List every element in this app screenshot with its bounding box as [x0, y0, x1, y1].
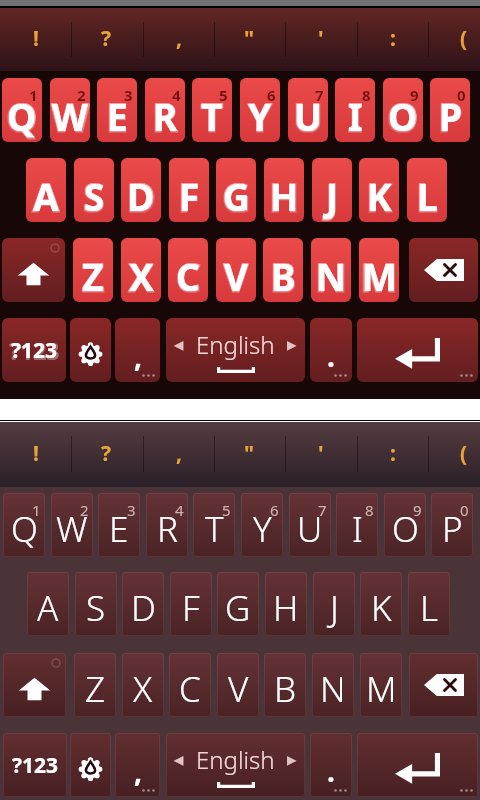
- button[interactable]: Q: [3, 493, 45, 557]
- button[interactable]: Period: [310, 733, 352, 797]
- staticText: O: [392, 505, 419, 553]
- staticText: J: [325, 169, 339, 222]
- button[interactable]: Symbols: [2, 318, 66, 382]
- staticText: ,: [176, 24, 182, 53]
- button[interactable]: (: [428, 8, 480, 71]
- staticText: M: [366, 665, 397, 713]
- button[interactable]: K: [360, 572, 402, 636]
- button[interactable]: M: [360, 653, 402, 717]
- staticText: V: [222, 248, 250, 302]
- button[interactable]: C: [169, 653, 211, 717]
- button[interactable]: F: [169, 158, 209, 222]
- button[interactable]: E: [98, 493, 140, 557]
- button[interactable]: O: [384, 493, 426, 557]
- staticText: W: [52, 91, 88, 141]
- button[interactable]: A: [26, 158, 66, 222]
- button[interactable]: R: [146, 493, 188, 557]
- button[interactable]: ": [214, 8, 285, 71]
- button[interactable]: (: [428, 422, 480, 487]
- button[interactable]: X: [121, 238, 161, 302]
- button[interactable]: T: [193, 493, 235, 557]
- button[interactable]: W: [51, 493, 93, 557]
- button[interactable]: F: [170, 572, 212, 636]
- staticText: I: [347, 88, 364, 142]
- button[interactable]: B: [263, 238, 303, 302]
- button[interactable]: L: [408, 572, 450, 636]
- staticText: Z: [82, 250, 105, 302]
- button[interactable]: M: [359, 238, 399, 302]
- button[interactable]: H: [265, 572, 307, 636]
- button[interactable]: Backspace: [409, 238, 478, 302]
- staticText: B: [274, 665, 297, 713]
- button[interactable]: Space: [166, 733, 305, 797]
- button[interactable]: P: [430, 78, 470, 142]
- button[interactable]: !: [0, 422, 71, 487]
- button[interactable]: I: [335, 78, 375, 142]
- staticText: 8: [365, 500, 374, 520]
- button[interactable]: N: [312, 653, 354, 717]
- button[interactable]: G: [216, 158, 256, 222]
- button[interactable]: D: [121, 158, 161, 222]
- button[interactable]: Q: [2, 78, 42, 142]
- button[interactable]: W: [50, 78, 90, 142]
- button[interactable]: Y: [240, 78, 280, 142]
- button[interactable]: ,: [143, 422, 214, 487]
- staticText: 1: [32, 500, 41, 520]
- button[interactable]: Z: [73, 238, 113, 302]
- button[interactable]: K: [359, 158, 399, 222]
- button[interactable]: Comma: [115, 318, 160, 382]
- button[interactable]: ?: [71, 422, 142, 487]
- button[interactable]: ?: [71, 8, 142, 71]
- button[interactable]: ,: [143, 8, 214, 71]
- button[interactable]: I: [336, 493, 378, 557]
- button[interactable]: B: [264, 653, 306, 717]
- button[interactable]: U: [289, 493, 331, 557]
- button[interactable]: Y: [241, 493, 283, 557]
- staticText: V: [223, 250, 249, 302]
- button[interactable]: Space: [166, 318, 305, 382]
- button[interactable]: N: [311, 238, 351, 302]
- button[interactable]: :: [357, 422, 428, 487]
- button[interactable]: ": [214, 422, 285, 487]
- staticText: X: [129, 251, 154, 301]
- button[interactable]: H: [264, 158, 304, 222]
- button[interactable]: D: [122, 572, 164, 636]
- button[interactable]: U: [288, 78, 328, 142]
- staticText: T: [205, 505, 224, 553]
- button[interactable]: !: [0, 8, 71, 71]
- button[interactable]: Settings: [70, 318, 111, 382]
- button[interactable]: Comma: [115, 733, 160, 797]
- button[interactable]: Shift: [2, 238, 65, 302]
- button[interactable]: J: [312, 158, 352, 222]
- button[interactable]: S: [75, 572, 117, 636]
- button[interactable]: V: [217, 653, 259, 717]
- staticText: V: [223, 249, 249, 302]
- button[interactable]: P: [431, 493, 473, 557]
- button[interactable]: :: [357, 8, 428, 71]
- button[interactable]: Enter: [357, 318, 478, 382]
- button[interactable]: Settings: [70, 733, 111, 797]
- button[interactable]: C: [168, 238, 208, 302]
- button[interactable]: Symbols: [3, 733, 67, 797]
- button[interactable]: O: [383, 78, 423, 142]
- button[interactable]: Z: [74, 653, 116, 717]
- button[interactable]: T: [192, 78, 232, 142]
- button[interactable]: L: [407, 158, 447, 222]
- button[interactable]: J: [313, 572, 355, 636]
- button[interactable]: R: [145, 78, 185, 142]
- button[interactable]: S: [74, 158, 114, 222]
- button[interactable]: V: [216, 238, 256, 302]
- staticText: U: [294, 91, 322, 141]
- button[interactable]: Enter: [357, 733, 478, 797]
- staticText: 0: [460, 500, 469, 520]
- button[interactable]: Shift: [3, 653, 66, 717]
- button[interactable]: G: [217, 572, 259, 636]
- button[interactable]: Backspace: [409, 653, 478, 717]
- button[interactable]: ': [285, 8, 356, 71]
- button[interactable]: ': [285, 422, 356, 487]
- button[interactable]: X: [122, 653, 164, 717]
- staticText: G: [222, 169, 251, 222]
- button[interactable]: A: [27, 572, 69, 636]
- button[interactable]: Period: [310, 318, 352, 382]
- button[interactable]: E: [97, 78, 137, 142]
